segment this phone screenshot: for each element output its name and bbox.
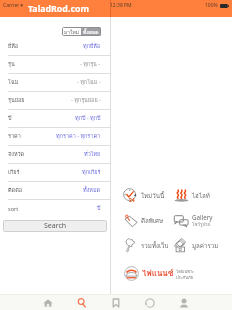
button[interactable]: ไฮไลท์: [174, 183, 232, 208]
staticText: รุ่น: [8, 60, 15, 69]
staticText: ทุกยี่ห้อ: [83, 42, 101, 51]
button[interactable]: มูลค่ารวม: [174, 233, 232, 258]
staticText: - ทุกรุ่นย่อย -: [71, 96, 101, 105]
staticText: ติดต่อ: [8, 186, 23, 195]
staticText: จังหวัด: [8, 150, 25, 159]
staticText: sort: [8, 205, 19, 212]
staticText: มาใหม่: [64, 28, 80, 36]
staticText: ทุกเกียร์: [82, 168, 101, 177]
staticText: รุ่นย่อย: [8, 96, 25, 105]
staticText: ปี: [8, 114, 12, 123]
staticText: Gallery: [192, 213, 213, 221]
staticText: Search: [44, 221, 67, 231]
button[interactable]: Home: [31, 295, 65, 310]
staticText: TaladRod.com: [28, 3, 90, 15]
staticText: ทุกราคา - ทุกราคา: [56, 132, 101, 141]
button[interactable]: ไฟแนนซ์: [124, 266, 195, 281]
button[interactable]: History: [133, 295, 167, 310]
staticText: เกียร์: [8, 168, 20, 177]
staticText: โดยเฉพาะ: [176, 268, 195, 274]
staticText: ทั้งหมด: [83, 28, 99, 36]
button[interactable]: ดีลพิเศษ: [123, 208, 183, 233]
staticText: ไฮไลท์: [192, 191, 210, 201]
button[interactable]: จังหวัด: [0, 145, 110, 163]
button[interactable]: ปี: [0, 109, 110, 127]
staticText: ยี่ห้อ: [8, 42, 19, 51]
staticText: Carrier ▾: [3, 2, 24, 9]
staticText: ประกันภัย: [176, 274, 193, 280]
staticText: 12:38 PM: [110, 2, 132, 9]
staticText: - ทุกโฉม -: [77, 78, 101, 87]
staticText: ไฟแนนซ์: [142, 267, 174, 280]
button[interactable]: รุ่น: [0, 55, 110, 73]
button[interactable]: sort: [0, 199, 110, 217]
button[interactable]: ยี่ห้อ: [0, 37, 110, 55]
staticText: มูลค่ารวม: [192, 241, 219, 251]
button[interactable]: รวมทั้งเว็บ: [123, 233, 183, 258]
staticText: ใหม่วันนี้: [141, 191, 165, 201]
button[interactable]: Bookmarks: [99, 295, 133, 310]
button[interactable]: Gallery: [174, 208, 232, 233]
staticText: 100%: [205, 2, 218, 9]
button[interactable]: Search: [3, 220, 107, 232]
staticText: ทั่วไทย: [84, 150, 101, 159]
button[interactable]: 24: [123, 183, 183, 208]
button[interactable]: รุ่นย่อย: [0, 91, 110, 109]
button[interactable]: Search: [65, 295, 99, 310]
button[interactable]: ทั้งหมด: [81, 27, 101, 36]
button[interactable]: ราคา: [0, 127, 110, 145]
button[interactable]: Profile: [167, 295, 201, 310]
staticText: รวมทั้งเว็บ: [141, 241, 169, 251]
staticText: โชว์รูปรถ: [192, 221, 211, 228]
button[interactable]: โฉม: [0, 73, 110, 91]
staticText: โฉม: [8, 78, 19, 87]
staticText: ราคา: [8, 132, 21, 141]
staticText: ทั้งหมด: [83, 186, 101, 195]
staticText: 24: [129, 197, 135, 204]
button[interactable]: มาใหม่: [62, 27, 81, 36]
staticText: - ทุกรุ่น -: [80, 60, 101, 69]
staticText: ทุกปี - ทุกปี: [75, 114, 101, 123]
staticText: ดีลพิเศษ: [141, 216, 164, 226]
button[interactable]: เกียร์: [0, 163, 110, 181]
staticText: ปี: [97, 204, 101, 213]
button[interactable]: ติดต่อ: [0, 181, 110, 199]
